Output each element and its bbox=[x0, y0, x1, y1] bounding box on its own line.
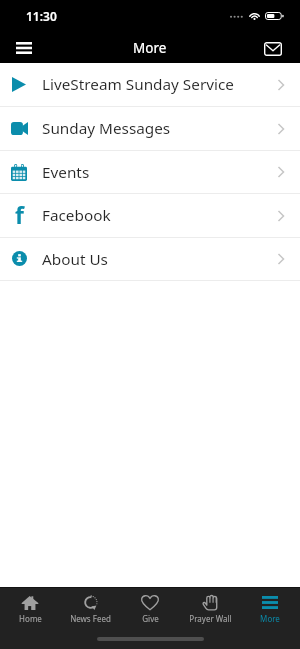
button[interactable]: Sunday Messages bbox=[0, 107, 300, 151]
staticText: Home bbox=[19, 613, 42, 624]
staticText: 11:30 bbox=[26, 8, 57, 24]
button[interactable]: Events bbox=[0, 151, 300, 194]
staticText: News Feed bbox=[70, 613, 111, 624]
staticText: Give bbox=[142, 613, 159, 624]
button[interactable]: Open navigation menu bbox=[0, 31, 48, 64]
staticText: More bbox=[133, 39, 167, 57]
staticText: LiveStream Sunday Service bbox=[42, 74, 234, 95]
button[interactable]: LiveStream Sunday Service bbox=[0, 63, 300, 107]
staticText: f bbox=[15, 199, 24, 230]
button[interactable]: Give bbox=[120, 588, 180, 628]
button[interactable]: Messages bbox=[246, 31, 300, 64]
staticText: More bbox=[260, 613, 280, 624]
button[interactable]: More bbox=[240, 588, 300, 628]
button[interactable]: Prayer Wall bbox=[180, 588, 240, 628]
staticText: Events bbox=[42, 162, 90, 183]
button[interactable]: News Feed bbox=[60, 588, 120, 628]
button[interactable]: About Us bbox=[0, 238, 300, 281]
staticText: About Us bbox=[42, 249, 108, 270]
staticText: Prayer Wall bbox=[189, 613, 232, 624]
button[interactable]: Home bbox=[0, 588, 60, 628]
button[interactable]: f bbox=[0, 194, 300, 238]
staticText: Sunday Messages bbox=[42, 118, 171, 139]
staticText: Facebook bbox=[42, 205, 111, 226]
